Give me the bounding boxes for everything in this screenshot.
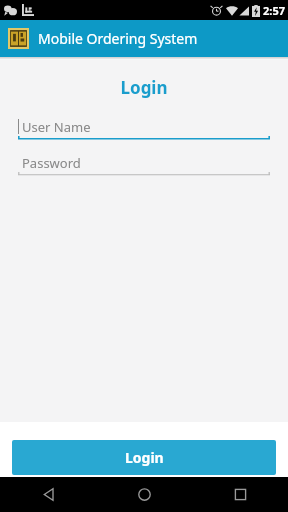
button[interactable]: Login xyxy=(12,440,276,475)
button[interactable]: Recent apps xyxy=(192,477,288,512)
staticText: Login xyxy=(0,76,288,99)
staticText: Password xyxy=(22,154,81,172)
button[interactable]: Home xyxy=(96,477,192,512)
staticText: Mobile Ordering System xyxy=(38,29,198,48)
staticText: 2:57 xyxy=(263,3,285,18)
button[interactable]: Back xyxy=(0,477,96,512)
button[interactable]: User Name xyxy=(18,116,270,142)
staticText: User Name xyxy=(22,118,91,136)
button[interactable]: Password xyxy=(18,152,270,178)
staticText: Login xyxy=(125,448,164,467)
